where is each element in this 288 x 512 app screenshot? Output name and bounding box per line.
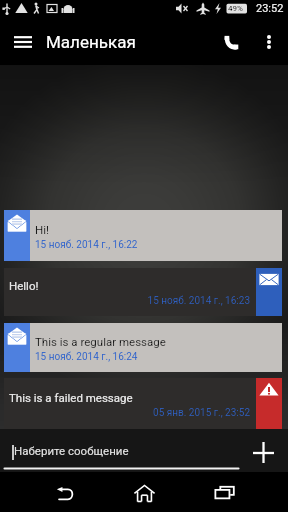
staticText: 49% <box>228 4 243 13</box>
button[interactable]: Navigation menu <box>8 27 38 57</box>
staticText: This is a regular message <box>35 335 166 348</box>
staticText: Маленькая <box>46 32 136 52</box>
staticText: Наберите сообщение <box>14 444 129 457</box>
staticText: 15 нояб. 2014 г., 16:23 <box>9 295 250 307</box>
staticText: Hello! <box>9 279 39 292</box>
button[interactable]: Hello! <box>4 268 282 316</box>
staticText: This is a failed message <box>9 391 133 404</box>
button[interactable]: Home <box>128 472 160 512</box>
staticText: Hi! <box>35 223 49 236</box>
staticText: 05 янв. 2015 г., 23:52 <box>9 407 250 419</box>
button[interactable]: Back <box>48 472 80 512</box>
staticText: 15 нояб. 2014 г., 16:22 <box>35 239 276 251</box>
button[interactable]: Hi! <box>4 210 282 261</box>
staticText: 23:52 <box>256 2 284 15</box>
button[interactable]: More options <box>253 26 285 58</box>
button[interactable]: Attach <box>247 436 280 469</box>
button[interactable]: This is a regular message <box>4 323 282 372</box>
button[interactable]: Recents <box>208 472 240 512</box>
staticText: 15 нояб. 2014 г., 16:24 <box>35 351 276 363</box>
button[interactable]: Call <box>215 26 247 58</box>
button[interactable]: This is a failed message <box>4 378 282 429</box>
